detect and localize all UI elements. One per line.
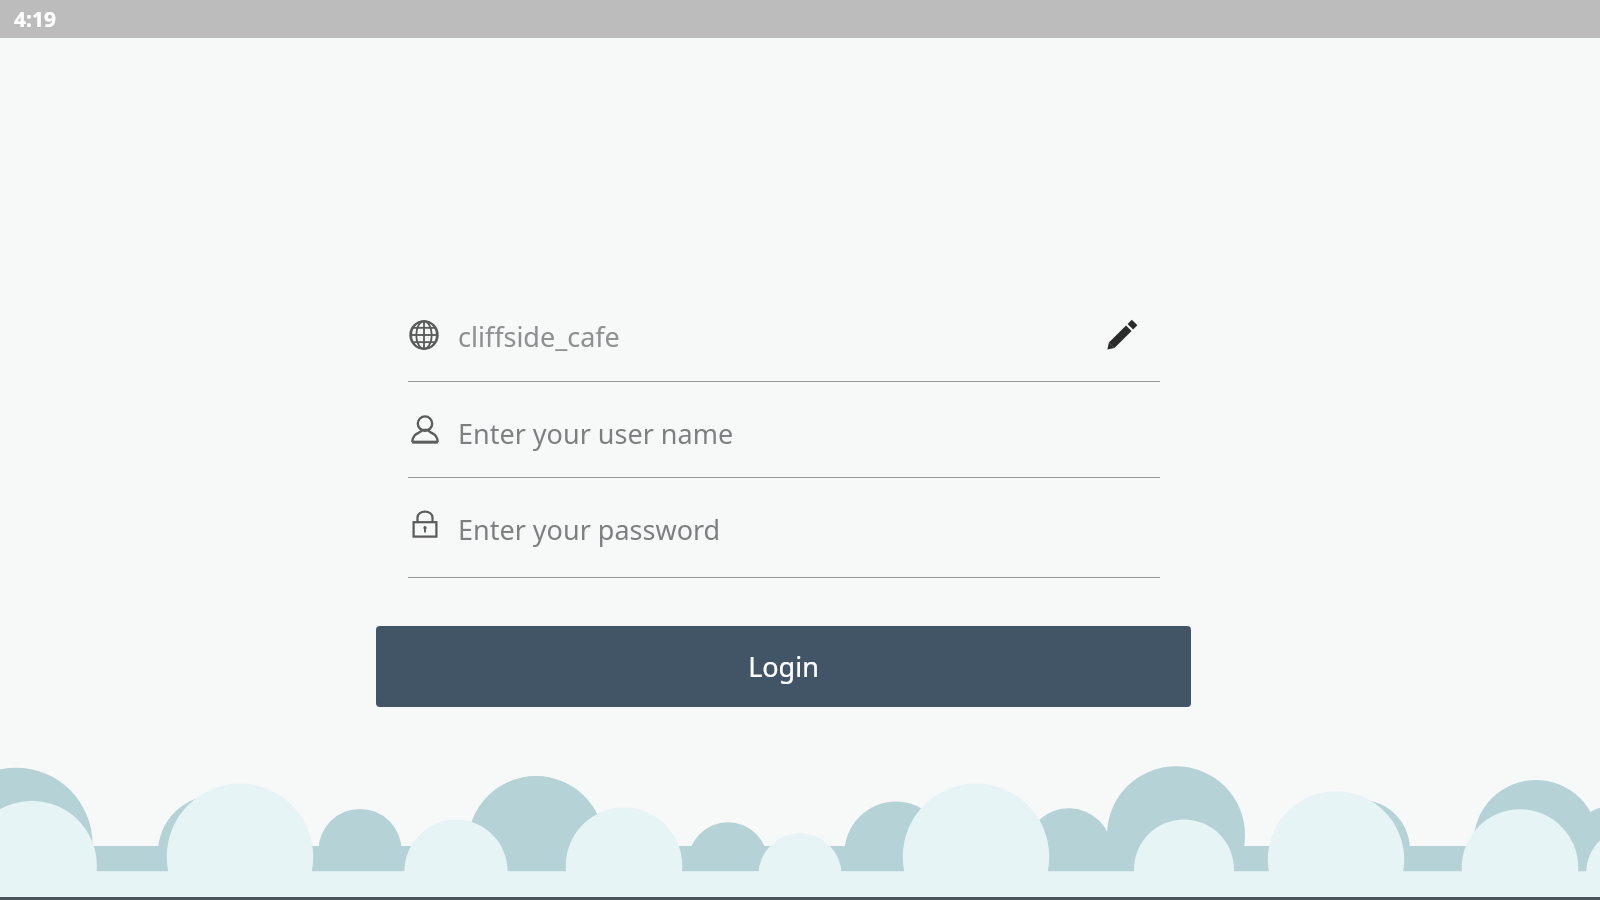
staticText: Login <box>748 648 819 685</box>
button[interactable]: Enter your password <box>376 492 1191 572</box>
button[interactable]: Login <box>376 626 1191 707</box>
staticText: Enter your password <box>458 511 721 548</box>
button[interactable]: cliffside_cafe <box>376 299 1191 383</box>
staticText: 4:19 <box>14 5 56 34</box>
staticText: Enter your user name <box>458 415 734 452</box>
staticText: cliffside_cafe <box>458 318 620 355</box>
button[interactable]: Edit <box>1093 308 1149 364</box>
button[interactable]: Enter your user name <box>376 396 1191 476</box>
